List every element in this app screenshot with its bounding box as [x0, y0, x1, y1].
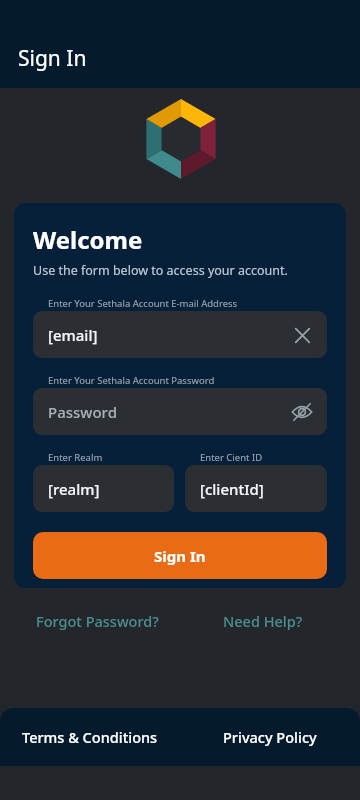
- staticText: Enter Your Sethala Account Password: [48, 374, 215, 387]
- staticText: Enter Your Sethala Account E-mail Addres…: [48, 297, 238, 310]
- staticText: Enter Cient ID: [200, 451, 263, 464]
- staticText: Privacy Policy: [223, 727, 317, 747]
- staticText: Welcome: [33, 223, 143, 256]
- button[interactable]: Forgot Password?: [14, 606, 180, 636]
- staticText: Need Help?: [223, 611, 303, 631]
- staticText: Enter Realm: [48, 451, 103, 464]
- staticText: Terms & Conditions: [22, 727, 158, 747]
- button[interactable]: Clear email: [285, 318, 319, 352]
- staticText: Password: [48, 402, 285, 422]
- button[interactable]: Terms & Conditions: [0, 708, 180, 766]
- staticText: [realm]: [48, 479, 166, 499]
- button[interactable]: Privacy Policy: [180, 708, 360, 766]
- staticText: [email]: [48, 325, 285, 345]
- button[interactable]: Sign In: [33, 532, 327, 579]
- staticText: Sign In: [154, 546, 206, 566]
- button[interactable]: [clientId]: [185, 465, 327, 512]
- button[interactable]: [email]: [33, 311, 327, 358]
- staticText: [clientId]: [200, 479, 319, 499]
- staticText: Use the form below to access your accoun…: [33, 262, 288, 279]
- staticText: Forgot Password?: [36, 611, 159, 631]
- button[interactable]: Show password: [285, 395, 319, 429]
- staticText: Sign In: [18, 44, 87, 73]
- button[interactable]: Password: [33, 388, 327, 435]
- button[interactable]: Need Help?: [180, 606, 346, 636]
- button[interactable]: [realm]: [33, 465, 174, 512]
